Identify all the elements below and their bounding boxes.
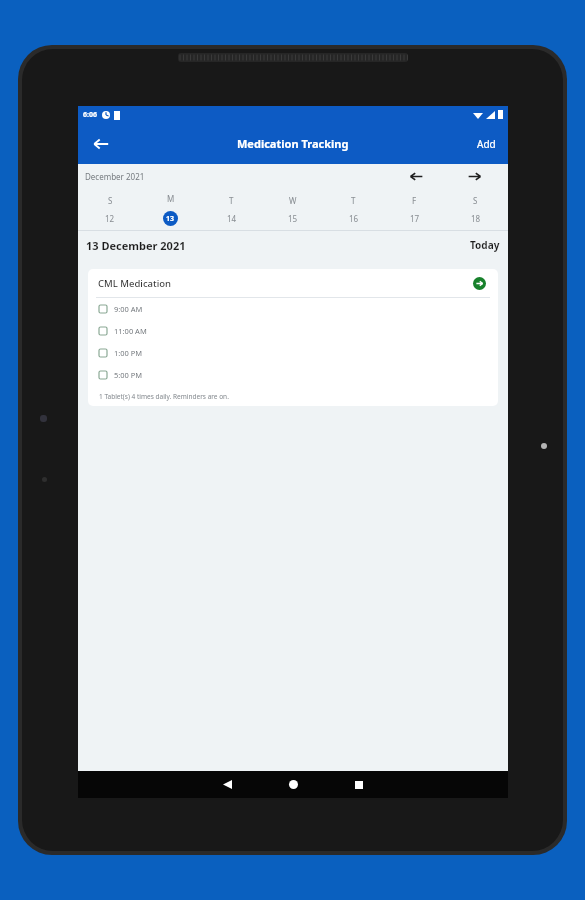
button[interactable]: W <box>262 188 323 230</box>
button[interactable]: S <box>445 188 506 230</box>
staticText: 18 <box>471 213 481 224</box>
button[interactable]: Next week <box>462 164 486 188</box>
button[interactable]: Back <box>84 127 118 161</box>
button[interactable]: Add <box>469 131 504 157</box>
staticText: CML Medication <box>98 277 171 290</box>
staticText: 15 <box>288 213 298 224</box>
staticText: 5:00 PM <box>114 370 143 380</box>
staticText: Today <box>470 238 500 252</box>
button[interactable]: Home <box>275 771 311 798</box>
button[interactable]: Back <box>209 771 245 798</box>
staticText: 1 Tablet(s) 4 times daily. Reminders are… <box>99 392 229 401</box>
staticText: M <box>167 193 175 204</box>
staticText: 9:00 AM <box>114 304 143 314</box>
staticText: Add <box>477 137 496 151</box>
staticText: T <box>351 195 356 206</box>
button[interactable]: Recents <box>341 771 377 798</box>
staticText: 16 <box>349 213 359 224</box>
button[interactable]: Today <box>470 238 500 252</box>
staticText: S <box>108 195 113 206</box>
button[interactable]: Previous week <box>404 164 428 188</box>
staticText: 13 <box>166 214 175 224</box>
staticText: December 2021 <box>85 171 145 182</box>
staticText: 6:06 <box>83 110 97 120</box>
staticText: 14 <box>227 213 237 224</box>
button[interactable]: S <box>80 188 140 230</box>
button[interactable]: Open medication details <box>470 274 488 292</box>
staticText: W <box>289 195 297 206</box>
button[interactable]: CML Medication <box>88 269 498 406</box>
staticText: 17 <box>410 213 420 224</box>
button[interactable]: 9:00 AM <box>88 298 498 320</box>
button[interactable]: T <box>323 188 384 230</box>
staticText: 12 <box>105 213 115 224</box>
staticText: T <box>229 195 234 206</box>
button[interactable]: M <box>140 188 201 230</box>
button[interactable]: 11:00 AM <box>88 320 498 342</box>
staticText: 1:00 PM <box>114 348 143 358</box>
staticText: F <box>412 195 417 206</box>
staticText: Medication Tracking <box>237 136 349 151</box>
staticText: 13 December 2021 <box>86 238 186 253</box>
staticText: S <box>473 195 478 206</box>
button[interactable]: T <box>201 188 262 230</box>
button[interactable]: 1:00 PM <box>88 342 498 364</box>
button[interactable]: 5:00 PM <box>88 364 498 386</box>
button[interactable]: F <box>384 188 445 230</box>
staticText: 11:00 AM <box>114 326 147 336</box>
